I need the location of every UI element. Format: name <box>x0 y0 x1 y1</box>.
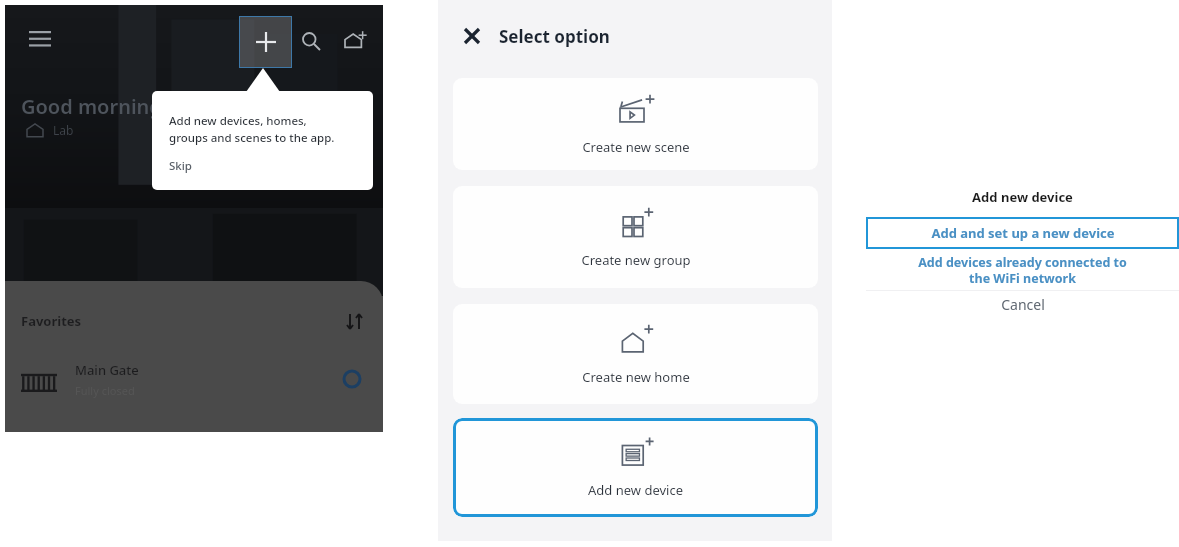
button[interactable]: Sort <box>341 308 367 334</box>
button[interactable]: Add home <box>341 27 369 55</box>
staticText: Select option <box>499 25 610 48</box>
staticText: Fully closed <box>75 383 135 398</box>
staticText: Create new group <box>581 251 691 269</box>
staticText: Good morning <box>21 93 162 120</box>
staticText: Lab <box>53 122 74 138</box>
button[interactable]: Create new scene <box>453 78 818 170</box>
staticText: Favorites <box>21 312 82 330</box>
button[interactable]: Search <box>297 27 325 55</box>
staticText: Add new device <box>972 188 1073 206</box>
button[interactable]: Create new home <box>453 304 818 404</box>
button[interactable]: Add and set up a new device <box>866 217 1179 249</box>
staticText: Create new home <box>582 368 690 386</box>
button[interactable]: Add devices already connected to the WiF… <box>866 249 1179 290</box>
staticText: Create new scene <box>582 138 690 156</box>
button[interactable]: Menu <box>23 27 57 51</box>
staticText: Skip <box>169 158 192 174</box>
button[interactable]: Add new device <box>453 418 818 517</box>
button[interactable]: Create new group <box>453 186 818 288</box>
staticText: Add devices already connected to the WiF… <box>918 254 1127 286</box>
button[interactable]: Skip <box>169 158 192 174</box>
button[interactable]: Cancel <box>866 291 1179 318</box>
staticText: Main Gate <box>75 361 139 379</box>
button[interactable]: Toggle gate <box>337 364 367 394</box>
button[interactable]: Add <box>239 16 292 68</box>
button[interactable]: Main Gate <box>21 346 367 412</box>
staticText: Cancel <box>1001 295 1045 314</box>
button[interactable]: Close <box>455 19 489 53</box>
staticText: Add and set up a new device <box>931 224 1115 242</box>
staticText: Add new device <box>588 481 683 499</box>
staticText: Add new devices, homes, groups and scene… <box>169 113 335 145</box>
